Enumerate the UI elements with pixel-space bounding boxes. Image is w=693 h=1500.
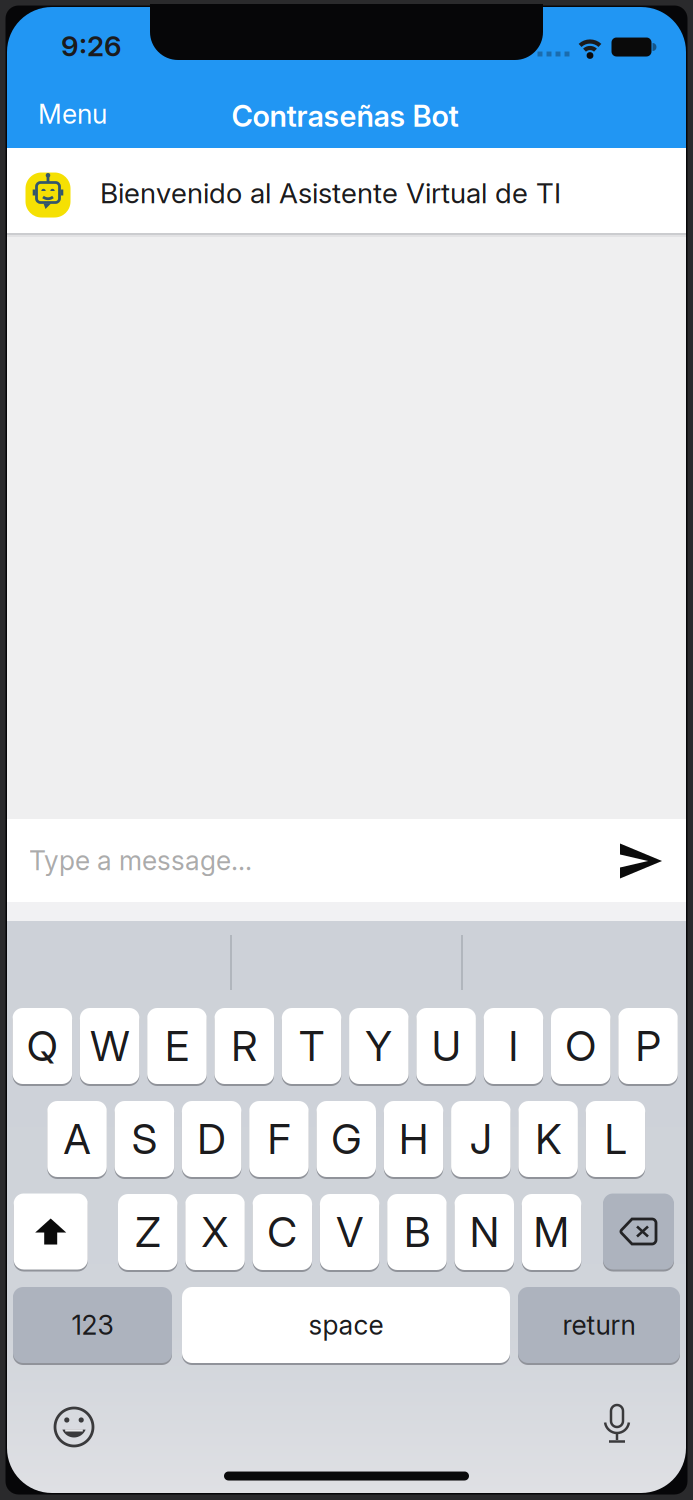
staticText: I — [508, 1022, 518, 1070]
staticText: M — [533, 1208, 569, 1256]
button[interactable]: Q — [13, 1008, 72, 1084]
staticText: W — [90, 1022, 129, 1070]
staticText: L — [604, 1115, 626, 1163]
staticText: Menu — [38, 98, 107, 130]
button[interactable]: H — [384, 1101, 443, 1177]
button[interactable]: M — [522, 1194, 581, 1270]
button[interactable]: R — [214, 1008, 274, 1084]
staticText: P — [635, 1022, 660, 1070]
button[interactable]: U — [416, 1008, 476, 1084]
button[interactable]: D — [182, 1101, 241, 1177]
staticText: return — [562, 1309, 635, 1341]
staticText: N — [470, 1208, 499, 1256]
button[interactable]: W — [80, 1008, 139, 1084]
button[interactable]: I — [484, 1008, 543, 1084]
staticText: G — [331, 1115, 361, 1163]
staticText: V — [336, 1208, 363, 1256]
button[interactable]: B — [387, 1194, 447, 1270]
button[interactable]: N — [454, 1194, 514, 1270]
staticText: 123 — [71, 1309, 113, 1341]
button[interactable]: Y — [349, 1008, 409, 1084]
staticText: R — [231, 1022, 257, 1070]
staticText: K — [535, 1115, 561, 1163]
button[interactable]: K — [518, 1101, 578, 1177]
button[interactable]: C — [253, 1194, 312, 1270]
button[interactable]: Z — [118, 1194, 177, 1270]
button[interactable]: Delete — [603, 1193, 674, 1269]
staticText: J — [470, 1115, 492, 1163]
button[interactable]: J — [451, 1101, 511, 1177]
button[interactable]: Emoji — [53, 1406, 95, 1448]
staticText: B — [404, 1208, 430, 1256]
staticText: Q — [27, 1022, 58, 1070]
button[interactable]: F — [249, 1101, 309, 1177]
button[interactable]: X — [185, 1194, 245, 1270]
staticText: C — [267, 1208, 297, 1256]
button[interactable]: S — [115, 1101, 174, 1177]
staticText: S — [132, 1115, 157, 1163]
button[interactable]: E — [147, 1008, 207, 1084]
staticText: 9:26 — [61, 29, 122, 62]
staticText: T — [299, 1022, 324, 1070]
button[interactable]: Shift — [14, 1193, 88, 1269]
button[interactable]: Type a message — [0, 819, 580, 902]
staticText: F — [267, 1115, 290, 1163]
button[interactable]: O — [551, 1008, 610, 1084]
staticText: O — [565, 1022, 596, 1070]
button[interactable]: P — [618, 1008, 678, 1084]
staticText: U — [432, 1022, 461, 1070]
button[interactable]: Menu — [38, 86, 148, 142]
button[interactable]: 123 — [13, 1287, 172, 1363]
staticText: Bienvenido al Asistente Virtual de TI — [100, 176, 561, 209]
staticText: Type a message... — [29, 845, 252, 876]
button[interactable]: Dictate — [597, 1403, 637, 1447]
button[interactable]: A — [47, 1101, 107, 1177]
staticText: E — [165, 1022, 189, 1070]
staticText: D — [197, 1115, 226, 1163]
button[interactable]: T — [282, 1008, 341, 1084]
staticText: space — [308, 1309, 383, 1341]
button[interactable]: V — [320, 1194, 379, 1270]
button[interactable]: Send — [619, 842, 663, 879]
button[interactable]: G — [316, 1101, 376, 1177]
staticText: Y — [365, 1022, 392, 1070]
staticText: Contraseñas Bot — [231, 99, 458, 133]
staticText: A — [63, 1115, 90, 1163]
staticText: X — [202, 1208, 229, 1256]
button[interactable]: return — [518, 1287, 680, 1363]
staticText: H — [399, 1115, 428, 1163]
button[interactable]: L — [586, 1101, 645, 1177]
button[interactable]: space — [182, 1287, 510, 1363]
staticText: Z — [135, 1208, 160, 1256]
